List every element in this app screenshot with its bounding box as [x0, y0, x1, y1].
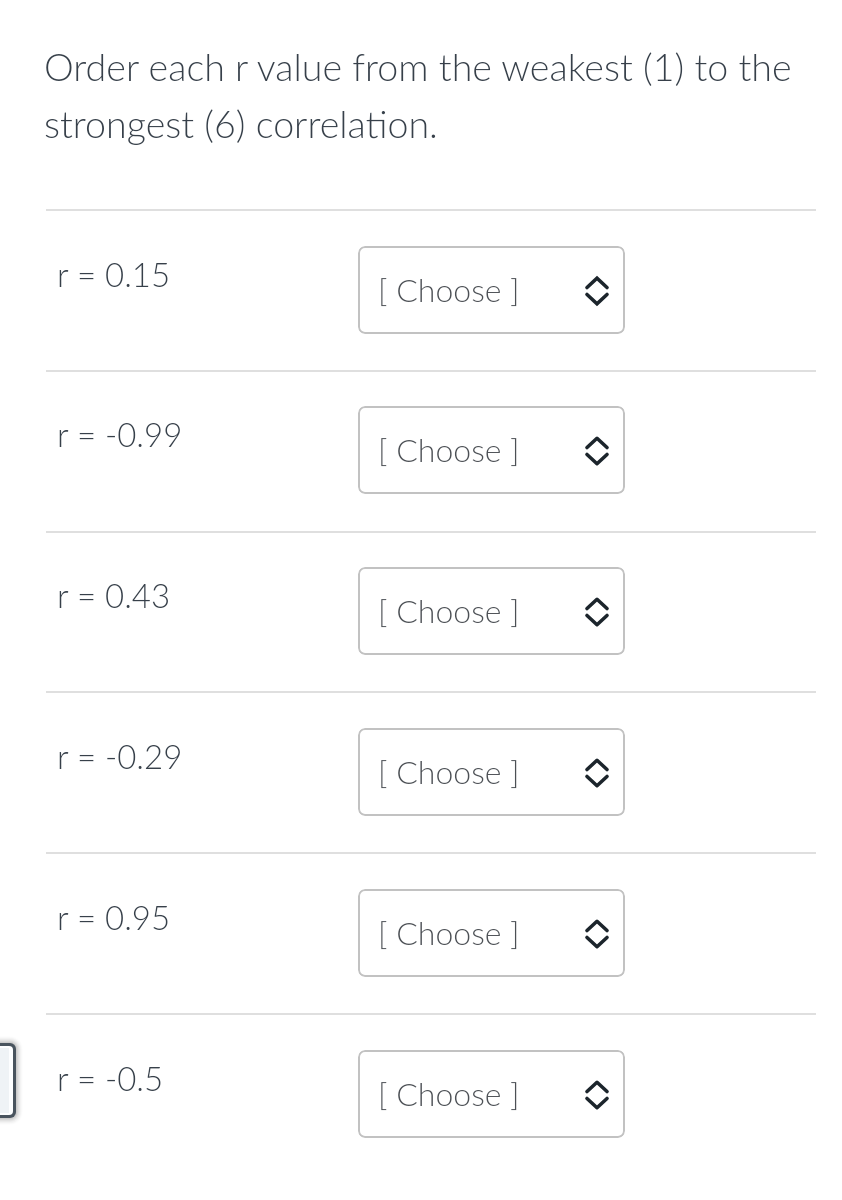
staticText: [ Choose ] — [378, 270, 520, 308]
button[interactable]: [ Choose ] — [358, 1050, 625, 1138]
staticText: r = 0.95 — [57, 897, 171, 937]
button[interactable]: Open navigation drawer — [0, 1043, 16, 1118]
button[interactable]: [ Choose ] — [358, 728, 625, 816]
staticText: r = 0.43 — [57, 575, 171, 615]
staticText: [ Choose ] — [378, 913, 520, 951]
staticText: r = -0.5 — [57, 1058, 164, 1098]
staticText: r = -0.99 — [57, 414, 183, 454]
staticText: [ Choose ] — [378, 430, 520, 468]
staticText: [ Choose ] — [378, 1074, 520, 1112]
button[interactable]: [ Choose ] — [358, 567, 625, 655]
staticText: [ Choose ] — [378, 752, 520, 790]
staticText: r = 0.15 — [57, 254, 171, 294]
button[interactable]: [ Choose ] — [358, 246, 625, 334]
button[interactable]: [ Choose ] — [358, 889, 625, 977]
staticText: Order each r value from the weakest (1) … — [44, 44, 824, 146]
staticText: [ Choose ] — [378, 591, 520, 629]
staticText: r = -0.29 — [57, 736, 183, 776]
button[interactable]: [ Choose ] — [358, 406, 625, 494]
